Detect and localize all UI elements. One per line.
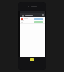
button[interactable]: Menu: [21, 14, 24, 17]
button[interactable]: Menu: [20, 13, 45, 17]
button[interactable]: Home: [30, 58, 34, 61]
button[interactable]: [20, 20, 45, 23]
button[interactable]: [20, 17, 45, 20]
